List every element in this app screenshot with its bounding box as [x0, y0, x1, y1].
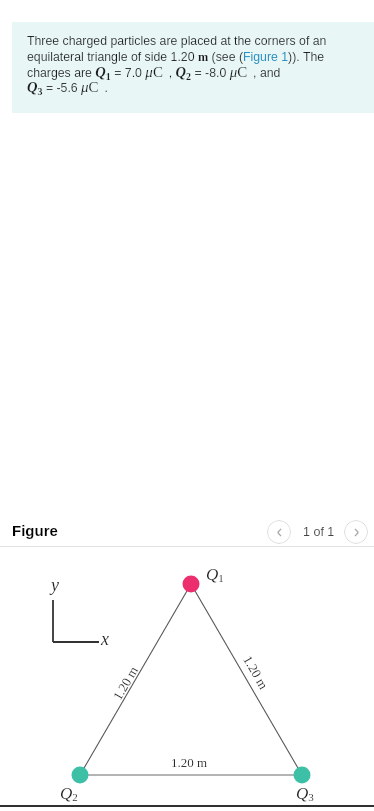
staticText: Three charged particles are placed at th…: [27, 34, 327, 48]
button[interactable]: Figure: [12, 522, 58, 539]
staticText: equilateral triangle of side 1.20 m (see…: [27, 50, 325, 64]
staticText: 1 of 1: [303, 525, 335, 539]
staticText: x: [101, 629, 109, 649]
button[interactable]: Next figure: [344, 520, 368, 544]
staticText: Q3: [296, 784, 314, 804]
staticText: Figure: [12, 522, 58, 539]
button[interactable]: Previous figure: [267, 520, 291, 544]
staticText: Q1: [206, 565, 224, 585]
staticText: Q2: [60, 784, 78, 804]
staticText: y: [51, 575, 59, 595]
staticText: 1.20 m: [171, 755, 208, 769]
staticText: charges are Q1 = 7.0 μC , Q2 = -8.0 μC ,…: [27, 64, 281, 82]
staticText: 1.20 m: [241, 653, 272, 692]
staticText: 1.20 m: [110, 663, 141, 702]
staticText: Q3 = -5.6 μC .: [27, 79, 108, 97]
